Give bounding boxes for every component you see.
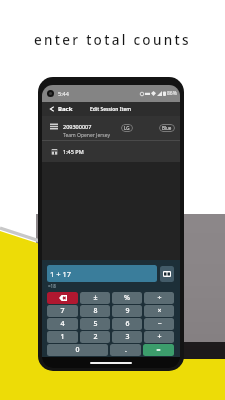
staticText: ±	[93, 293, 98, 303]
staticText: 4	[60, 319, 65, 329]
staticText: 9	[125, 306, 130, 316]
button[interactable]: 9	[112, 305, 142, 317]
button[interactable]: LG	[121, 124, 133, 132]
button[interactable]: 0	[47, 344, 108, 356]
staticText: Back	[58, 105, 73, 113]
button[interactable]: Switch keyboard	[160, 266, 174, 282]
staticText: 1:45 PM	[63, 148, 84, 155]
button[interactable]: 7	[47, 305, 78, 317]
button[interactable]: +	[144, 331, 174, 343]
staticText: ÷	[157, 293, 162, 303]
staticText: 86%	[167, 90, 177, 97]
staticText: 1	[60, 332, 65, 342]
staticText: 1 + 17	[50, 269, 72, 279]
button[interactable]: 1:45 PM	[42, 141, 180, 162]
button[interactable]: 6	[112, 318, 142, 330]
button[interactable]: 5	[80, 318, 110, 330]
button[interactable]: 3	[112, 331, 142, 343]
button[interactable]: ÷	[144, 292, 174, 304]
button[interactable]: ±	[80, 292, 110, 304]
staticText: +	[157, 332, 162, 342]
button[interactable]: Back	[42, 105, 77, 113]
staticText: Edit Session Item	[90, 106, 132, 113]
button[interactable]: 2	[80, 331, 110, 343]
button[interactable]: 1	[47, 331, 78, 343]
button[interactable]: 4	[47, 318, 78, 330]
staticText: =	[156, 345, 161, 355]
staticText: ×	[157, 306, 162, 316]
staticText: 3	[125, 332, 130, 342]
button[interactable]: .	[110, 344, 141, 356]
button[interactable]: Blue	[159, 124, 175, 132]
staticText: 6	[125, 319, 130, 329]
staticText: 5	[93, 319, 98, 329]
staticText: .	[125, 345, 127, 355]
button[interactable]: 1 + 17	[47, 265, 157, 282]
staticText: 7	[60, 306, 65, 316]
staticText: LG	[124, 125, 130, 131]
button[interactable]: =	[143, 344, 174, 356]
button[interactable]: 8	[80, 305, 110, 317]
staticText: 8	[93, 306, 98, 316]
button[interactable]: 209300007	[42, 116, 180, 140]
staticText: Team Opener Jersey	[63, 132, 111, 139]
staticText: 0	[75, 345, 80, 355]
staticText: enter total counts	[34, 31, 191, 49]
staticText: %	[124, 293, 130, 303]
button[interactable]: %	[112, 292, 142, 304]
staticText: −	[157, 319, 162, 329]
staticText: Blue	[162, 125, 172, 131]
staticText: 2	[93, 332, 98, 342]
button[interactable]: −	[144, 318, 174, 330]
staticText: 5:44	[58, 90, 69, 97]
staticText: 209300007	[63, 123, 92, 130]
button[interactable]: ×	[144, 305, 174, 317]
button[interactable]: Delete	[47, 292, 78, 304]
staticText: =18	[48, 283, 56, 289]
